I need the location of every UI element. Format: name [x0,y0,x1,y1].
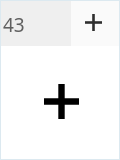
staticText: 43 [3,12,25,38]
button[interactable]: Add [71,0,115,44]
button[interactable]: 43 [0,0,71,46]
button[interactable]: Add item [37,77,85,125]
